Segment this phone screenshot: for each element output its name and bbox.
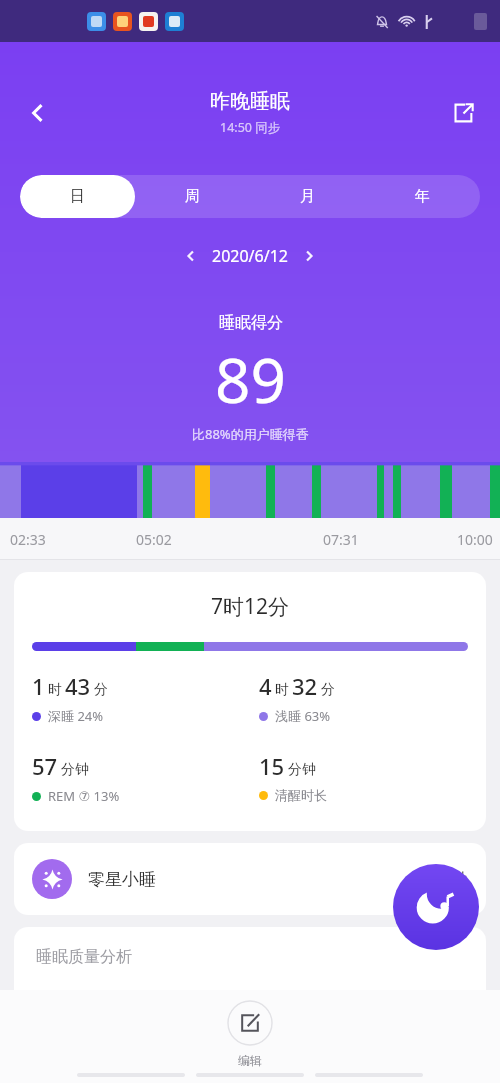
button[interactable]: 睡眠质量分析 — [14, 927, 486, 1047]
staticText: 1 — [32, 671, 45, 701]
staticText: 02:33 — [10, 530, 46, 549]
staticText: 深睡 24% — [48, 707, 104, 725]
button[interactable]: 零星小睡 — [14, 843, 486, 915]
button[interactable]: 编辑 — [213, 998, 287, 1070]
staticText: 4 — [259, 671, 272, 701]
staticText: 57 — [32, 751, 58, 781]
staticText: 15 — [259, 751, 285, 781]
staticText: 07:31 — [323, 530, 359, 549]
button[interactable]: 周 — [135, 175, 250, 218]
staticText: 时 — [275, 681, 289, 699]
staticText: 年 — [415, 187, 430, 206]
staticText: 月 — [300, 187, 315, 206]
staticText: REM ⑦ 13% — [48, 787, 120, 805]
staticText: 时 — [48, 681, 62, 699]
button[interactable]: Share — [442, 92, 484, 134]
staticText: 分 — [321, 681, 335, 699]
staticText: 分钟 — [61, 761, 89, 779]
staticText: 周 — [185, 187, 200, 206]
staticText: 比88%的用户睡得香 — [192, 425, 309, 443]
staticText: 2020/6/12 — [212, 245, 288, 267]
staticText: 43 — [65, 671, 91, 701]
staticText: 42分钟 — [417, 868, 468, 890]
staticText: 7时12分 — [14, 592, 486, 621]
button[interactable]: Next day — [292, 239, 326, 273]
staticText: 05:02 — [136, 530, 172, 549]
staticText: 睡眠质量分析 — [36, 947, 132, 967]
staticText: 89 — [215, 337, 286, 421]
staticText: 浅睡 63% — [275, 707, 331, 725]
staticText: 编辑 — [238, 1053, 262, 1068]
staticText: 日 — [70, 187, 85, 206]
staticText: 清醒时长 — [275, 787, 327, 803]
staticText: 零星小睡 — [88, 869, 156, 890]
button[interactable]: Back — [16, 91, 60, 135]
staticText: 分 — [94, 681, 108, 699]
staticText: 分钟 — [288, 761, 316, 779]
staticText: 32 — [292, 671, 318, 701]
button[interactable]: 日 — [20, 175, 135, 218]
staticText: 睡眠得分 — [219, 313, 283, 333]
button[interactable]: 7时12分 — [14, 572, 486, 831]
button[interactable]: 年 — [365, 175, 480, 218]
button[interactable]: Previous day — [174, 239, 208, 273]
button[interactable]: Sleep music — [393, 864, 479, 950]
staticText: 14:50 同步 — [220, 119, 281, 136]
button[interactable]: 月 — [250, 175, 365, 218]
staticText: 昨晚睡眠 — [210, 89, 290, 114]
staticText: 10:00 — [457, 530, 493, 549]
